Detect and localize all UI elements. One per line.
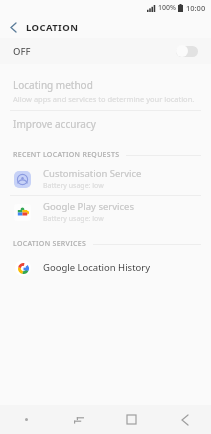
staticText: Customisation Service bbox=[43, 167, 142, 180]
staticText: 100% bbox=[158, 3, 176, 13]
staticText: Locating method bbox=[13, 78, 93, 92]
staticText: Battery usage: low bbox=[43, 214, 104, 224]
staticText: 10:00 bbox=[186, 3, 206, 13]
staticText: Battery usage: low bbox=[43, 181, 104, 191]
staticText: Improve accuracy bbox=[13, 117, 96, 131]
staticText: Allow apps and services to determine you… bbox=[13, 94, 195, 104]
staticText: LOCATION bbox=[26, 21, 79, 34]
button[interactable]: OFF bbox=[0, 38, 211, 64]
button[interactable]: Customisation Service bbox=[0, 163, 211, 195]
button[interactable]: Recent apps bbox=[52, 405, 105, 434]
staticText: RECENT LOCATION REQUESTS bbox=[13, 150, 120, 160]
button[interactable]: Improve accuracy bbox=[0, 111, 211, 137]
button[interactable]: Navigate up bbox=[0, 16, 26, 38]
staticText: OFF bbox=[13, 45, 31, 58]
button[interactable]: Google Location History bbox=[0, 252, 211, 282]
button[interactable]: Locating method bbox=[0, 72, 211, 110]
staticText: Google Play services bbox=[43, 200, 134, 213]
button[interactable]: Google Play services bbox=[0, 196, 211, 228]
button[interactable]: Back bbox=[158, 405, 211, 434]
button[interactable]: Home bbox=[105, 405, 158, 434]
staticText: LOCATION SERVICES bbox=[13, 239, 87, 249]
staticText: Google Location History bbox=[43, 261, 151, 274]
